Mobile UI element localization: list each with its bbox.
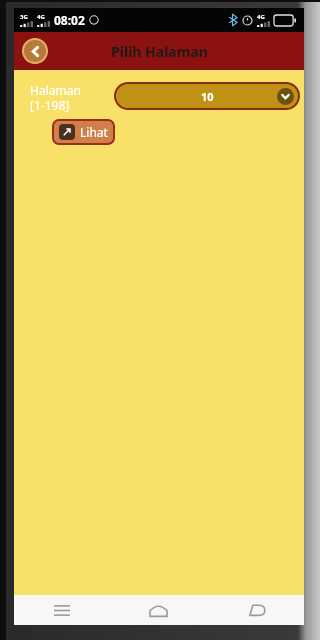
button[interactable]: Back — [207, 595, 304, 625]
staticText: 10 — [201, 89, 214, 104]
button[interactable]: Lihat — [52, 119, 115, 145]
button[interactable]: Home — [110, 595, 207, 625]
button[interactable]: Recent apps — [14, 595, 110, 625]
staticText: Pilih Halaman — [111, 42, 208, 61]
staticText: 08:02 — [54, 12, 85, 28]
staticText: 4G — [257, 13, 265, 21]
staticText: Lihat — [80, 124, 108, 140]
staticText: 4G — [37, 13, 45, 21]
staticText: Halaman [1-198] — [30, 82, 108, 113]
button[interactable]: 10 — [114, 82, 300, 110]
button[interactable]: Back — [22, 38, 48, 64]
staticText: 3G — [20, 13, 28, 21]
